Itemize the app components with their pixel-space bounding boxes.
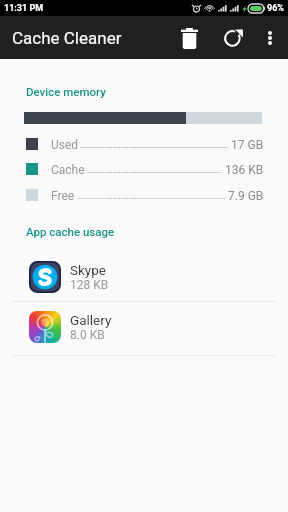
staticText: Cache: [51, 163, 85, 177]
staticText: 7.9 GB: [228, 189, 264, 203]
staticText: App cache usage: [26, 225, 115, 238]
button[interactable]: Clear cache: [170, 16, 208, 59]
staticText: Device memory: [26, 85, 106, 98]
staticText: Cache Cleaner: [12, 28, 122, 48]
button[interactable]: Refresh: [215, 16, 253, 59]
staticText: 136 KB: [225, 163, 264, 177]
staticText: Gallery: [70, 312, 112, 328]
button[interactable]: Gallery: [0, 302, 288, 352]
staticText: Skype: [70, 262, 106, 278]
button[interactable]: More options: [252, 16, 288, 59]
staticText: 17 GB: [231, 138, 264, 152]
staticText: 11:31 PM: [4, 3, 44, 14]
staticText: 8.0 KB: [70, 328, 105, 342]
button[interactable]: Skype: [0, 252, 288, 302]
staticText: Used: [51, 138, 79, 152]
staticText: Free: [51, 189, 75, 203]
staticText: 128 KB: [70, 278, 109, 292]
staticText: 96%: [267, 3, 284, 14]
